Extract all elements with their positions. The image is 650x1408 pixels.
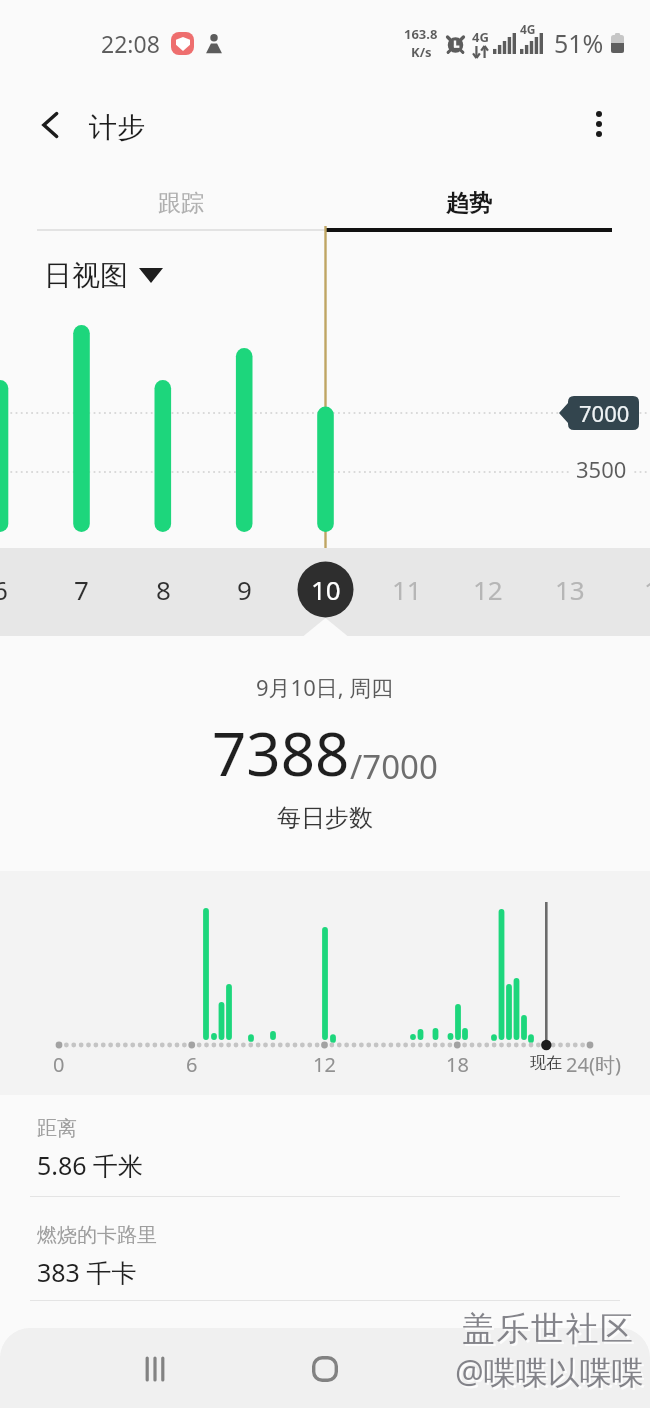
button[interactable]: 13 [530, 548, 610, 631]
staticText: 4G [520, 21, 536, 37]
staticText: 24(时) [566, 1051, 621, 1078]
staticText: 5.86 千米 [37, 1148, 144, 1182]
button[interactable]: 12 [448, 548, 528, 631]
staticText: 0 [53, 1051, 65, 1078]
staticText: 每日步数 [277, 803, 373, 833]
staticText: K/s [411, 43, 432, 61]
staticText: 383 千卡 [37, 1255, 137, 1289]
staticText: 4G [472, 28, 489, 46]
staticText: 10 [311, 572, 341, 607]
staticText: 日视图 [44, 258, 128, 293]
staticText: 22:08 [101, 28, 160, 59]
button[interactable]: 跟踪 [37, 178, 325, 228]
staticText: 163.8 [404, 25, 438, 43]
button[interactable]: 11 [367, 548, 447, 631]
button[interactable]: 6 [0, 548, 40, 631]
staticText: 距离 [37, 1116, 77, 1141]
staticText: 51% [554, 26, 604, 60]
button[interactable]: Home [285, 1329, 365, 1408]
staticText: 3500 [576, 454, 627, 482]
staticText: 盖乐世社区 [462, 1308, 635, 1350]
staticText: 盖乐世社区 [464, 1310, 637, 1352]
staticText: 6 [0, 572, 8, 607]
staticText: 11 [392, 572, 422, 607]
button[interactable]: 9 [204, 548, 284, 631]
staticText: 9月10日, 周四 [256, 672, 394, 702]
staticText: 1 [644, 572, 650, 607]
staticText: 9 [237, 572, 252, 607]
staticText: @喋喋以喋喋 [457, 1352, 646, 1396]
button[interactable]: 8 [123, 548, 203, 631]
staticText: 燃烧的卡路里 [37, 1223, 157, 1248]
staticText: 跟踪 [158, 189, 204, 218]
button[interactable]: 10 [286, 548, 366, 631]
button[interactable]: 燃烧的卡路里 [0, 1197, 650, 1300]
staticText: 13 [555, 572, 585, 607]
staticText: 趋势 [446, 189, 492, 218]
button[interactable]: 距离 [0, 1095, 650, 1196]
staticText: 12 [313, 1051, 336, 1078]
staticText: @喋喋以喋喋 [455, 1350, 644, 1394]
button[interactable]: More options [570, 95, 628, 153]
button[interactable]: 趋势 [325, 178, 612, 228]
staticText: 12 [473, 572, 503, 607]
button[interactable]: 7 [41, 548, 121, 631]
button[interactable]: 日视图 [44, 258, 163, 293]
staticText: 8 [156, 572, 171, 607]
staticText: 18 [446, 1051, 469, 1078]
button[interactable]: Back [20, 95, 80, 155]
button[interactable]: Recents [115, 1329, 195, 1408]
staticText: 7 [74, 572, 89, 607]
button[interactable]: Back [455, 1329, 535, 1408]
staticText: 7000 [579, 398, 630, 428]
staticText: 7388 [212, 712, 350, 794]
staticText: 计步 [89, 110, 145, 145]
staticText: /7000 [350, 744, 438, 789]
staticText: 6 [186, 1051, 198, 1078]
staticText: 现在 [530, 1053, 562, 1073]
